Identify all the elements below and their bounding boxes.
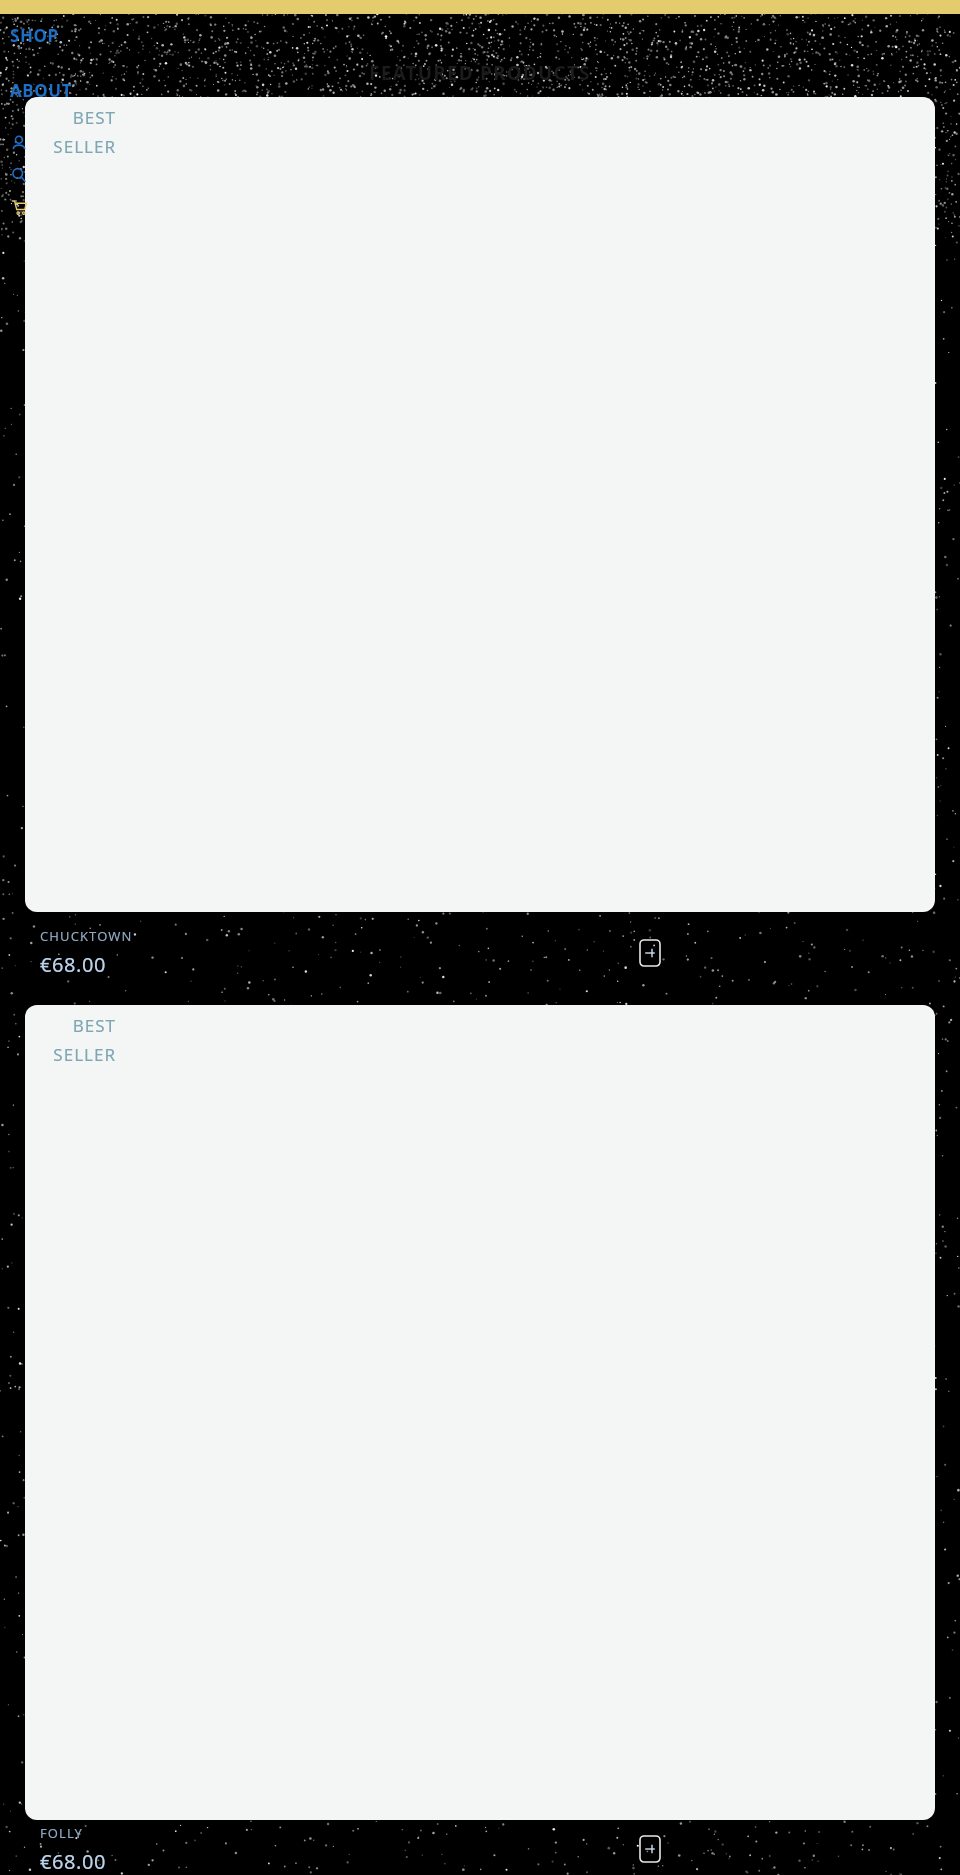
staticText: BEST SELLER	[53, 106, 116, 158]
button[interactable]: SHOP	[8, 22, 61, 49]
staticText: FOLLY	[40, 1824, 83, 1842]
staticText: FEATURED PRODUCTS	[369, 60, 591, 86]
staticText: BEST SELLER	[53, 1014, 116, 1066]
button[interactable]: Cart	[8, 196, 30, 218]
staticText: €68.00	[40, 1848, 107, 1875]
button[interactable]: FOLLY	[40, 1823, 920, 1875]
button[interactable]: ABOUT	[8, 77, 75, 104]
button[interactable]: BEST SELLER	[25, 97, 935, 912]
button[interactable]: Search	[8, 164, 30, 186]
button[interactable]: BEST SELLER	[25, 1005, 935, 1820]
button[interactable]: Account	[8, 132, 30, 154]
staticText: CHUCKTOWN	[40, 927, 133, 945]
staticText: €68.00	[40, 951, 107, 978]
button[interactable]: Add to cart	[640, 1836, 660, 1862]
button[interactable]: Add to cart	[640, 940, 660, 966]
button[interactable]: CHUCKTOWN	[40, 915, 920, 990]
